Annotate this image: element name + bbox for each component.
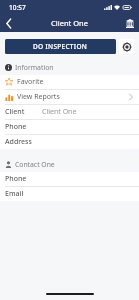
- button[interactable]: Favorite: [0, 75, 139, 89]
- staticText: View Reports: [17, 92, 60, 102]
- button[interactable]: Phone: [0, 120, 139, 134]
- staticText: Email: [5, 189, 24, 199]
- staticText: Contact One: [15, 160, 55, 169]
- button[interactable]: Email: [0, 187, 139, 201]
- button[interactable]: View Reports: [0, 90, 139, 104]
- staticText: Phone: [5, 122, 27, 132]
- staticText: Address: [5, 137, 32, 147]
- button[interactable]: Address: [0, 135, 139, 149]
- staticText: Client: [5, 107, 25, 117]
- staticText: Phone: [5, 174, 27, 184]
- staticText: Client One: [51, 18, 88, 28]
- button[interactable]: Settings: [119, 39, 134, 54]
- button[interactable]: Client: [0, 105, 139, 119]
- staticText: Favorite: [17, 77, 44, 87]
- staticText: 10:57: [9, 3, 26, 12]
- staticText: DO INSPECTION: [33, 42, 88, 51]
- button[interactable]: Company: [121, 14, 139, 32]
- staticText: Client One: [42, 107, 77, 117]
- button[interactable]: Back: [0, 14, 18, 32]
- button[interactable]: DO INSPECTION: [5, 39, 116, 54]
- button[interactable]: Phone: [0, 172, 139, 186]
- staticText: Information: [15, 63, 54, 72]
